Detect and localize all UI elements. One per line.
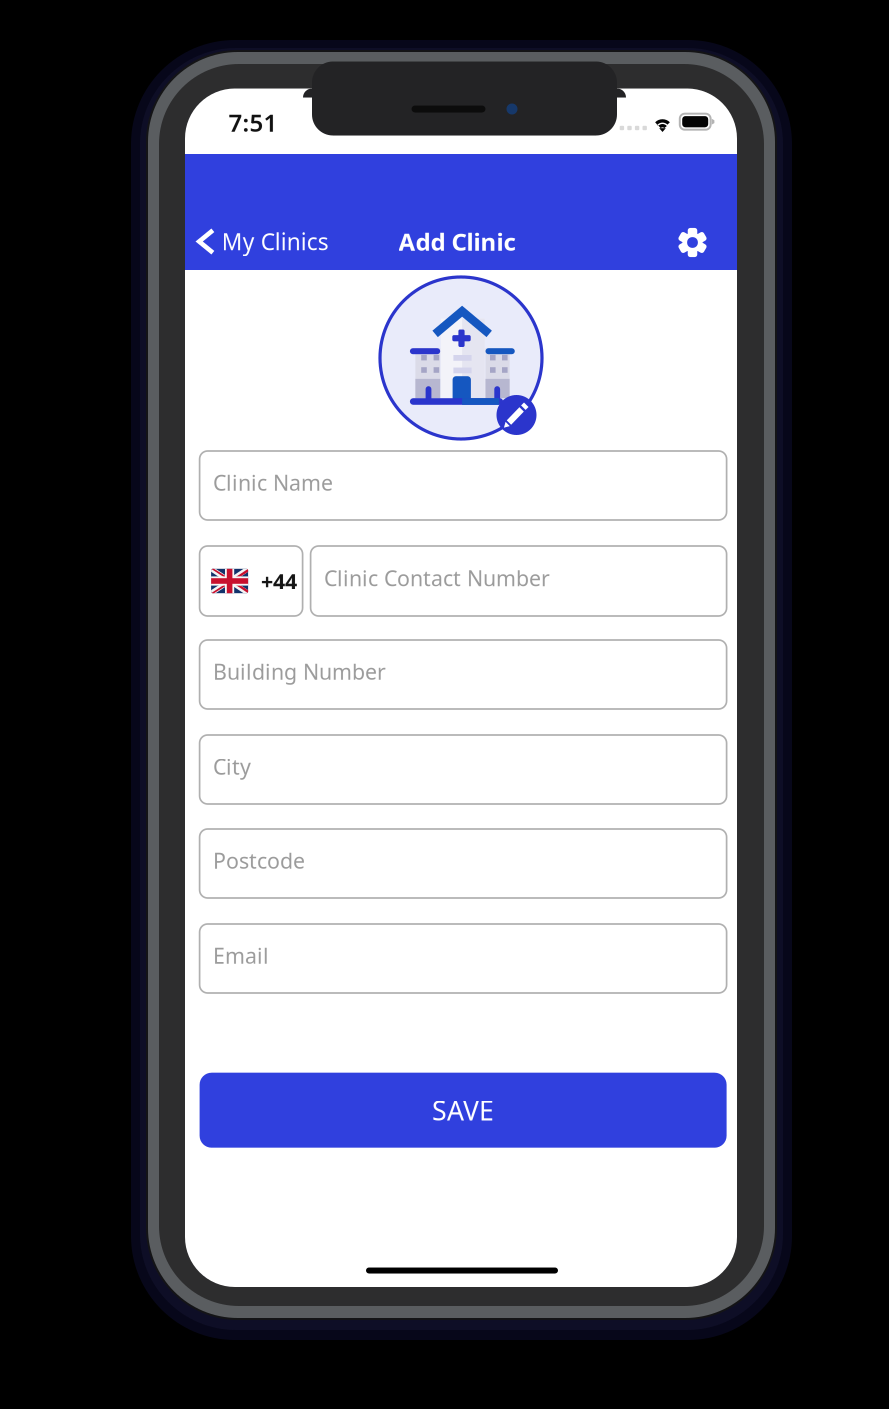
button[interactable]: Country code +44 <box>200 546 303 616</box>
staticText: My Clinics <box>222 226 329 256</box>
staticText: Email <box>213 941 269 970</box>
staticText: Clinic Name <box>213 468 333 497</box>
button[interactable]: Building Number <box>200 640 727 709</box>
staticText: Clinic Contact Number <box>324 564 550 592</box>
button[interactable]: SAVE <box>200 1073 727 1148</box>
staticText: 7:51 <box>228 107 277 138</box>
staticText: Add Clinic <box>398 226 515 257</box>
button[interactable]: City <box>200 735 727 804</box>
staticText: Building Number <box>213 657 386 686</box>
button[interactable]: Change clinic photo <box>380 277 542 439</box>
button[interactable]: Clinic Name <box>200 451 727 520</box>
button[interactable]: Email <box>200 924 727 993</box>
staticText: City <box>213 752 251 781</box>
button[interactable]: Settings <box>668 218 716 266</box>
button[interactable]: My Clinics <box>184 213 339 269</box>
staticText: +44 <box>261 567 297 595</box>
button[interactable]: Clinic Contact Number <box>311 546 727 616</box>
staticText: Postcode <box>213 846 305 875</box>
staticText: SAVE <box>432 1092 494 1128</box>
button[interactable]: Postcode <box>200 829 727 898</box>
